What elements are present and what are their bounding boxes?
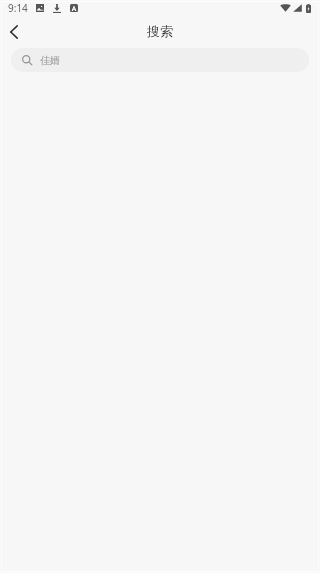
staticText: 佳婿 (40, 54, 60, 67)
staticText: 9:14 (8, 1, 28, 15)
button[interactable]: 佳婿 (11, 48, 309, 72)
button[interactable]: Back (0, 16, 30, 46)
staticText: 搜索 (147, 23, 173, 39)
